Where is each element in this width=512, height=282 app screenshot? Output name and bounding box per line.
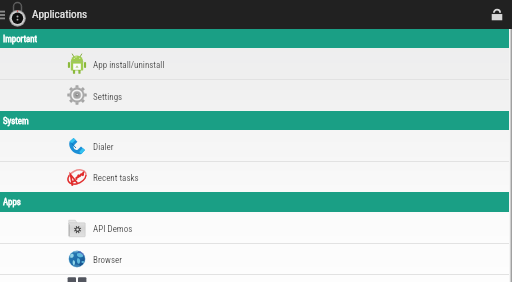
button[interactable]: Lock <box>488 6 506 24</box>
button[interactable]: Important <box>0 29 512 48</box>
button[interactable]: Dialer <box>0 130 512 161</box>
staticText: Dialer <box>93 142 114 153</box>
staticText: Settings <box>93 92 123 103</box>
button[interactable]: API Demos <box>0 212 512 243</box>
staticText: System <box>3 116 29 126</box>
button[interactable]: Browser <box>0 243 512 274</box>
button[interactable]: Calculator <box>0 274 512 282</box>
button[interactable]: Navigation menu <box>0 10 5 20</box>
button[interactable]: App install/uninstall <box>0 48 512 79</box>
button[interactable]: Settings <box>0 79 512 111</box>
button[interactable]: System <box>0 111 512 130</box>
staticText: Apps <box>3 197 21 207</box>
staticText: App install/uninstall <box>93 60 165 71</box>
staticText: Browser <box>93 255 122 266</box>
button[interactable]: Recent tasks <box>0 161 512 192</box>
staticText: Applications <box>32 8 88 21</box>
button[interactable]: Apps <box>0 192 512 212</box>
staticText: API Demos <box>93 224 133 235</box>
staticText: Important <box>3 34 38 44</box>
staticText: Recent tasks <box>93 173 139 184</box>
other: Applications icon <box>8 1 27 27</box>
